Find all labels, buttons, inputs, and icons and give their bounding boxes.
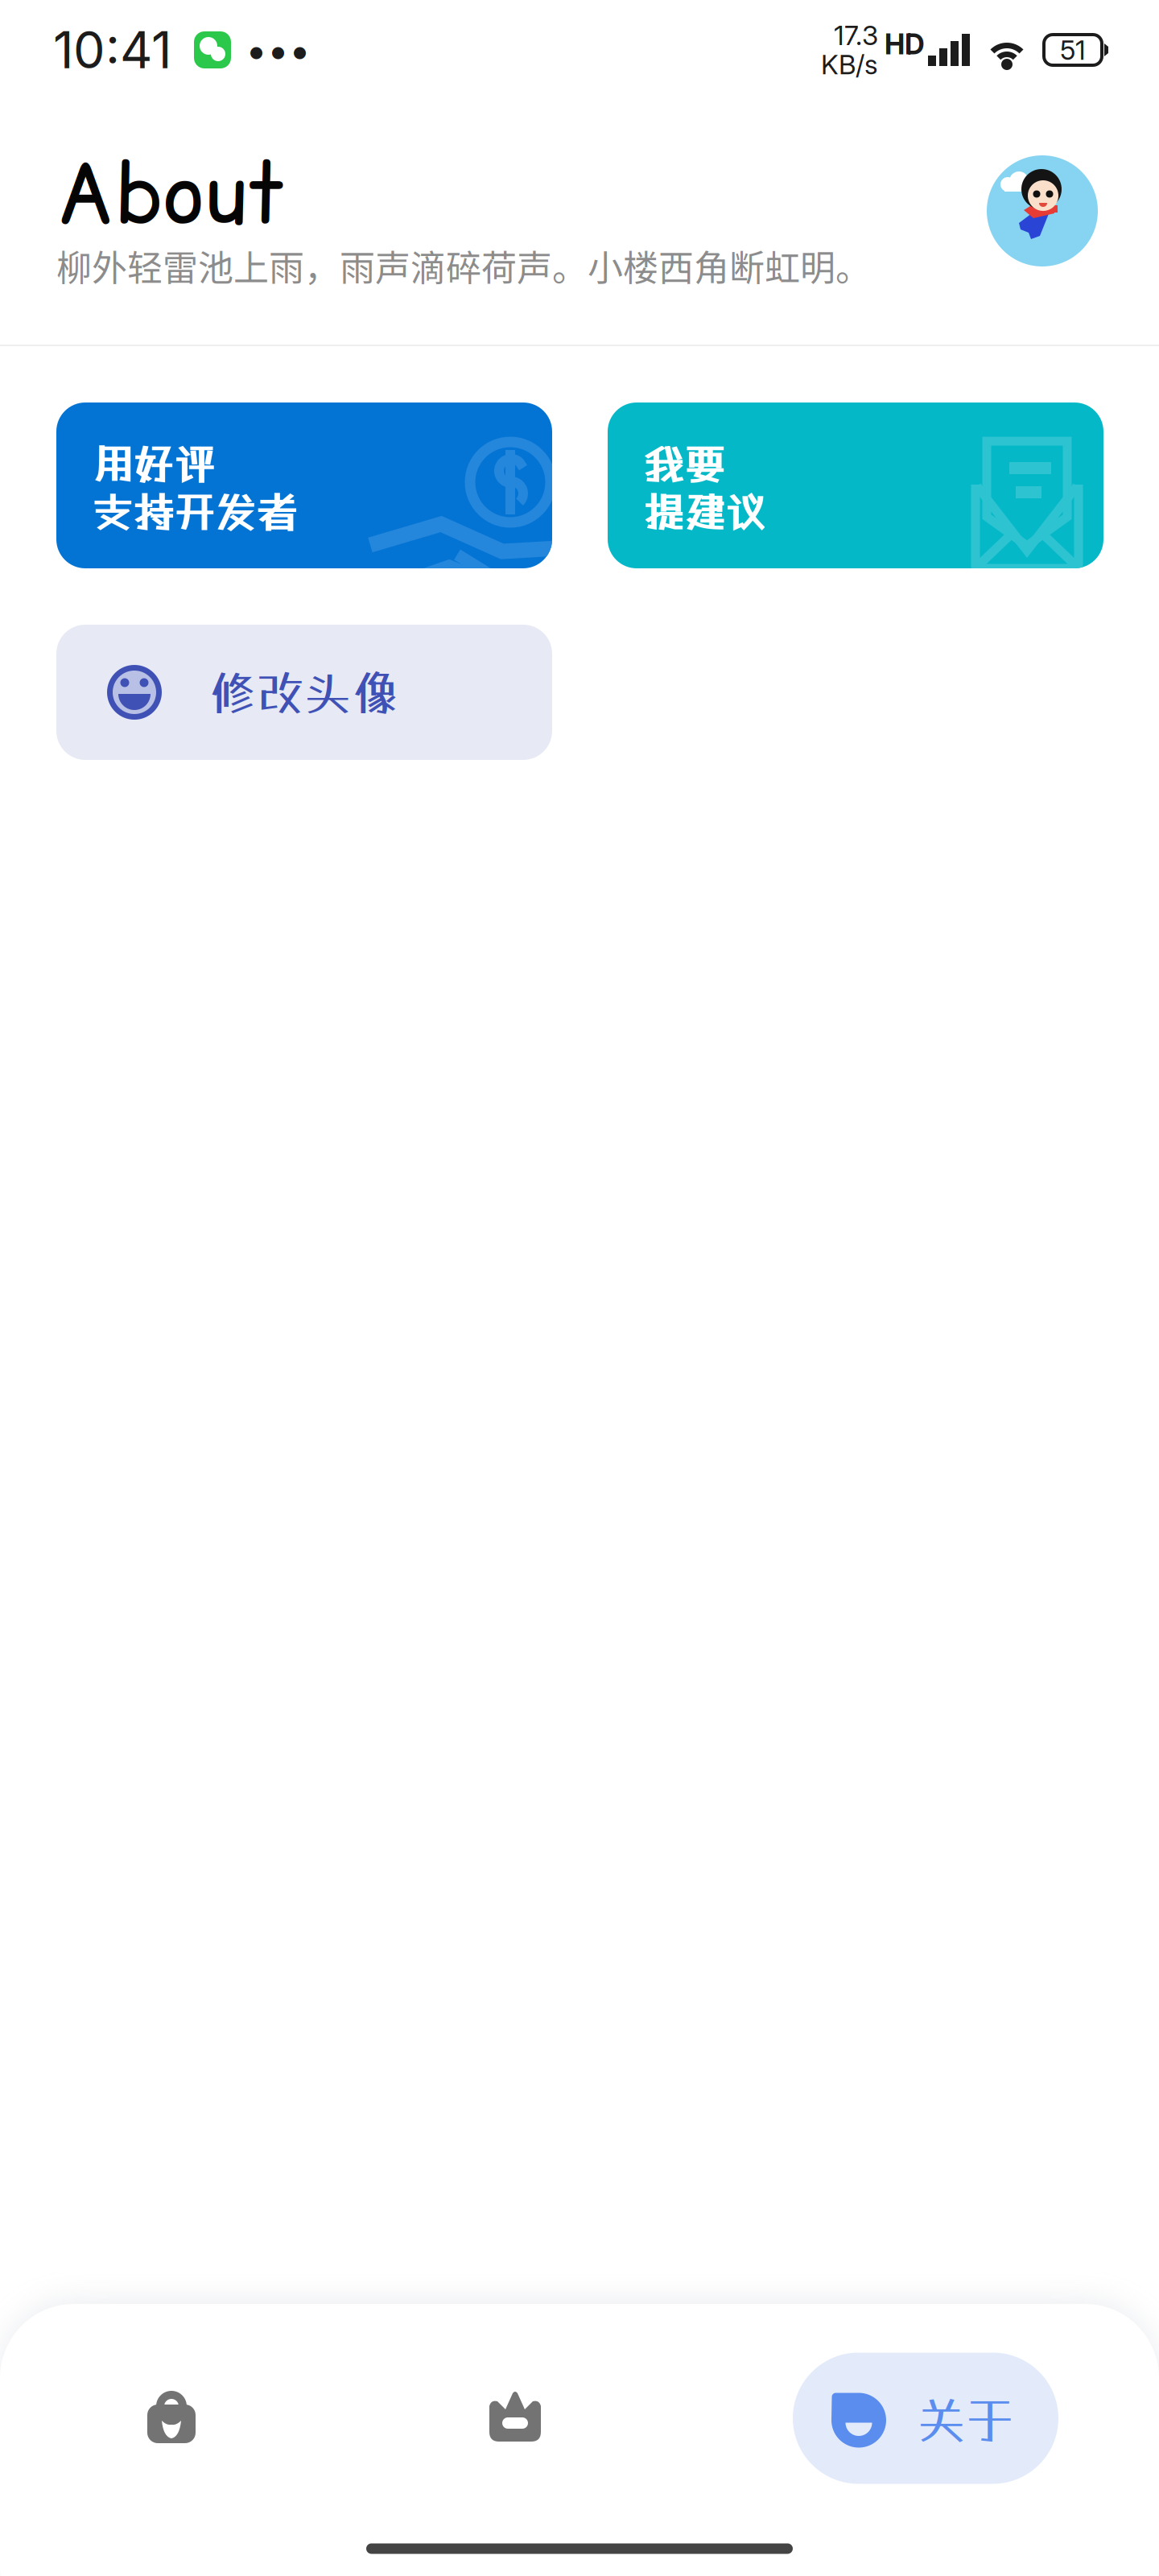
staticText: ••• [245,27,311,73]
button[interactable]: Store [75,2348,268,2485]
staticText: 10:41 [53,19,171,80]
staticText: 提建议 [643,488,766,537]
staticText: KB/s [821,48,878,81]
staticText: HD [885,27,925,61]
button[interactable]: Profile picture [975,144,1109,278]
staticText: About [56,137,285,249]
staticText: 柳外轻雷池上雨，雨声滴碎荷声。小楼西角断虹明。 [56,240,871,291]
button[interactable]: 修改头像 [56,625,552,760]
staticText: 用好评 [92,440,215,488]
staticText: 支持开发者 [92,488,297,537]
staticText: 17.3 [834,19,878,52]
button[interactable]: 我要 [608,402,1103,568]
staticText: 关于 [918,2392,1014,2449]
staticText: 51 [1060,34,1086,66]
button[interactable]: 用好评 [56,402,552,568]
button[interactable]: 关于 [793,2353,1058,2484]
staticText: 我要 [643,440,725,488]
button[interactable]: Membership [419,2348,612,2485]
staticText: 修改头像 [209,664,399,720]
